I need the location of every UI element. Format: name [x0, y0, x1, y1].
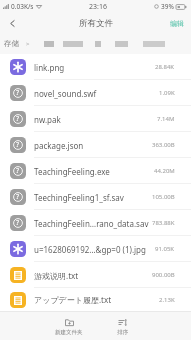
staticText: package.json: [34, 140, 150, 151]
staticText: TeachingFeeling.exe: [34, 166, 152, 177]
button[interactable]: 编辑: [165, 13, 184, 33]
button[interactable]: 排序: [96, 311, 148, 340]
button[interactable]: 游戏说明.txt: [0, 262, 191, 288]
staticText: u=1628069192…&gp=0 (1).jpg: [34, 244, 153, 255]
staticText: アップデート履歴.txt: [34, 294, 157, 305]
staticText: ?: [16, 114, 20, 124]
staticText: ?: [16, 140, 20, 150]
staticText: TeechingFeeling1_sf.sav: [34, 192, 150, 203]
staticText: 游戏说明.txt: [34, 270, 150, 281]
staticText: 28.84K: [155, 63, 175, 71]
staticText: ?: [16, 166, 20, 176]
staticText: 783.88K: [152, 219, 175, 227]
staticText: ?: [16, 218, 20, 228]
staticText: 91.05K: [155, 245, 175, 253]
button[interactable]: ?: [0, 184, 191, 210]
staticText: 新建文件夹: [55, 329, 83, 336]
staticText: ?: [16, 88, 20, 98]
staticText: 0.03K/s: [11, 2, 34, 11]
button[interactable]: ?: [0, 106, 191, 132]
staticText: 44.20M: [154, 167, 175, 175]
staticText: 2.13K: [159, 296, 175, 304]
button[interactable]: link.png: [0, 54, 191, 80]
button[interactable]: Back: [0, 13, 24, 33]
button[interactable]: ?: [0, 80, 191, 106]
staticText: 39%: [161, 2, 174, 11]
staticText: 所有文件: [79, 18, 113, 29]
staticText: ?: [16, 192, 20, 202]
staticText: nw.pak: [34, 114, 155, 125]
staticText: TeachingFeelin…rano_data.sav: [34, 218, 150, 229]
button[interactable]: ?: [0, 158, 191, 184]
staticText: 7.14M: [157, 115, 175, 123]
staticText: 105.00B: [152, 193, 175, 201]
staticText: 363.00B: [152, 141, 175, 149]
staticText: 排序: [117, 329, 128, 336]
button[interactable]: ?: [0, 210, 191, 236]
staticText: 存储: [4, 39, 19, 48]
staticText: 编辑: [170, 19, 184, 28]
staticText: >: [26, 40, 30, 48]
staticText: 1.09K: [159, 89, 175, 97]
button[interactable]: 新建文件夹: [43, 311, 95, 340]
button[interactable]: アップデート履歴.txt: [0, 288, 191, 311]
button[interactable]: u=1628069192…&gp=0 (1).jpg: [0, 236, 191, 262]
staticText: link.png: [34, 62, 153, 73]
staticText: 23:16: [89, 2, 107, 12]
staticText: 900.00B: [152, 271, 175, 279]
button[interactable]: ?: [0, 132, 191, 158]
staticText: novel_sound.swf: [34, 88, 157, 99]
